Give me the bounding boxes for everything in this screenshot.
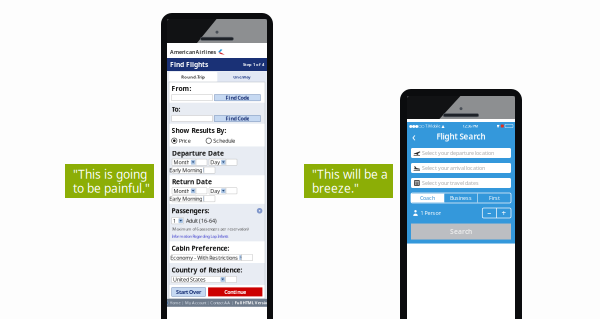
staticText: Coach [420, 194, 435, 202]
staticText: Business [450, 194, 472, 202]
button[interactable]: Business [444, 193, 477, 202]
staticText: – [487, 208, 491, 218]
button[interactable]: Round-Trip [169, 72, 217, 82]
button[interactable]: Day [209, 188, 226, 194]
button[interactable]: Coach [411, 193, 444, 202]
button[interactable]: Search [411, 223, 511, 239]
button[interactable]: 1 [172, 217, 184, 224]
staticText: ▲ [441, 124, 444, 128]
staticText: To: [172, 105, 181, 114]
staticText: 1 Person [420, 209, 441, 217]
staticText: Find Code [225, 94, 249, 101]
staticText: Full HTML Version [235, 300, 271, 305]
button[interactable]: Find Code [214, 94, 260, 101]
staticText: Passengers: [172, 206, 210, 215]
staticText: Continue [224, 288, 246, 295]
staticText: 1 [173, 217, 176, 224]
staticText: ▼ [497, 124, 500, 128]
staticText: Country of Residence: [172, 266, 243, 274]
button[interactable]: Day [209, 159, 226, 165]
staticText: | [231, 300, 233, 305]
staticText: | [182, 300, 184, 305]
staticText: American [170, 48, 195, 56]
staticText: Contact AA [210, 300, 230, 305]
staticText: Schedule [213, 137, 235, 144]
staticText: Departure Date [172, 149, 224, 157]
button[interactable]: One-Way [217, 72, 266, 82]
staticText: Adult (16-64) [186, 217, 217, 224]
button[interactable]: Increase passengers [497, 208, 511, 218]
staticText: | [207, 300, 209, 305]
staticText: Economy - With Restrictions [170, 254, 238, 261]
staticText: Find Code [225, 115, 249, 122]
staticText: Flight Search [436, 131, 485, 142]
staticText: to be painful." [73, 180, 150, 196]
staticText: Month [173, 159, 189, 166]
staticText: Price [179, 137, 191, 144]
button[interactable]: Early Morning [172, 196, 204, 202]
staticText: Early Morning [169, 195, 202, 202]
button[interactable]: Month [172, 188, 196, 194]
staticText: "This will be a [312, 166, 388, 182]
staticText: Search [450, 227, 472, 236]
staticText: Day [210, 159, 220, 166]
button[interactable]: United States [172, 276, 226, 283]
staticText: Show Results By: [172, 126, 227, 135]
staticText: My Account [185, 300, 206, 305]
button[interactable]: Find Code [214, 115, 260, 122]
staticText: Early Morning [169, 167, 202, 174]
staticText: United States [173, 276, 206, 283]
button[interactable]: Select your arrival location [411, 163, 511, 173]
staticText: Select your arrival location [422, 164, 485, 172]
staticText: Home [169, 300, 180, 305]
button[interactable]: Select your departure location [411, 148, 511, 158]
button[interactable]: Select your travel dates [411, 178, 511, 188]
staticText: Airlines [195, 48, 216, 56]
staticText: T-Mobile [425, 123, 440, 129]
staticText: breeze." [312, 180, 359, 196]
staticText: Start Over [176, 288, 201, 295]
button[interactable]: Continue [208, 287, 262, 296]
staticText: Cabin Preference: [172, 244, 230, 253]
staticText: Round-Trip [181, 74, 205, 80]
button[interactable]: Start Over [172, 287, 206, 296]
staticText: Return Date [172, 177, 212, 186]
staticText: "This is going [73, 166, 147, 182]
staticText: (Maximum of 6 passengers per reservation… [172, 226, 249, 232]
staticText: ●●●○○ [409, 124, 424, 128]
staticText: From: [172, 84, 192, 93]
staticText: + [501, 208, 506, 218]
staticText: 12:36 PM [462, 123, 478, 129]
staticText: Information Regarding Lap Infants [172, 234, 229, 239]
staticText: Month [173, 187, 189, 194]
staticText: Find Flights [170, 60, 208, 69]
staticText: Day [210, 187, 220, 194]
button[interactable]: Economy - With Restrictions [172, 254, 242, 261]
staticText: Select your departure location [422, 149, 494, 157]
button[interactable]: First [478, 193, 511, 202]
staticText: Select your travel dates [422, 179, 479, 187]
staticText: One-Way [233, 74, 250, 80]
staticText: ‹ [412, 128, 416, 144]
staticText: First [489, 194, 500, 202]
button[interactable]: Early Morning [172, 167, 204, 173]
button[interactable]: Decrease passengers [482, 208, 496, 218]
button[interactable]: Back [409, 130, 419, 142]
button[interactable]: Month [172, 159, 196, 165]
staticText: Step 1 of 4 [243, 62, 264, 67]
